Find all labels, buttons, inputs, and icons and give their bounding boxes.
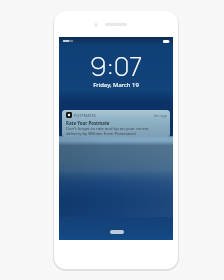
staticText: Don't forget to rate and tip on your rec…: [66, 126, 149, 132]
staticText: POSTMATES: [74, 113, 97, 118]
staticText: Friday, March 19: [59, 81, 173, 89]
staticText: Rate Your Postmate: [66, 120, 110, 126]
staticText: delivery by William from Postmates!: [66, 131, 137, 137]
staticText: 9:07: [59, 47, 173, 84]
button[interactable]: POSTMATES: [62, 110, 170, 137]
staticText: 6m ago: [154, 113, 168, 118]
